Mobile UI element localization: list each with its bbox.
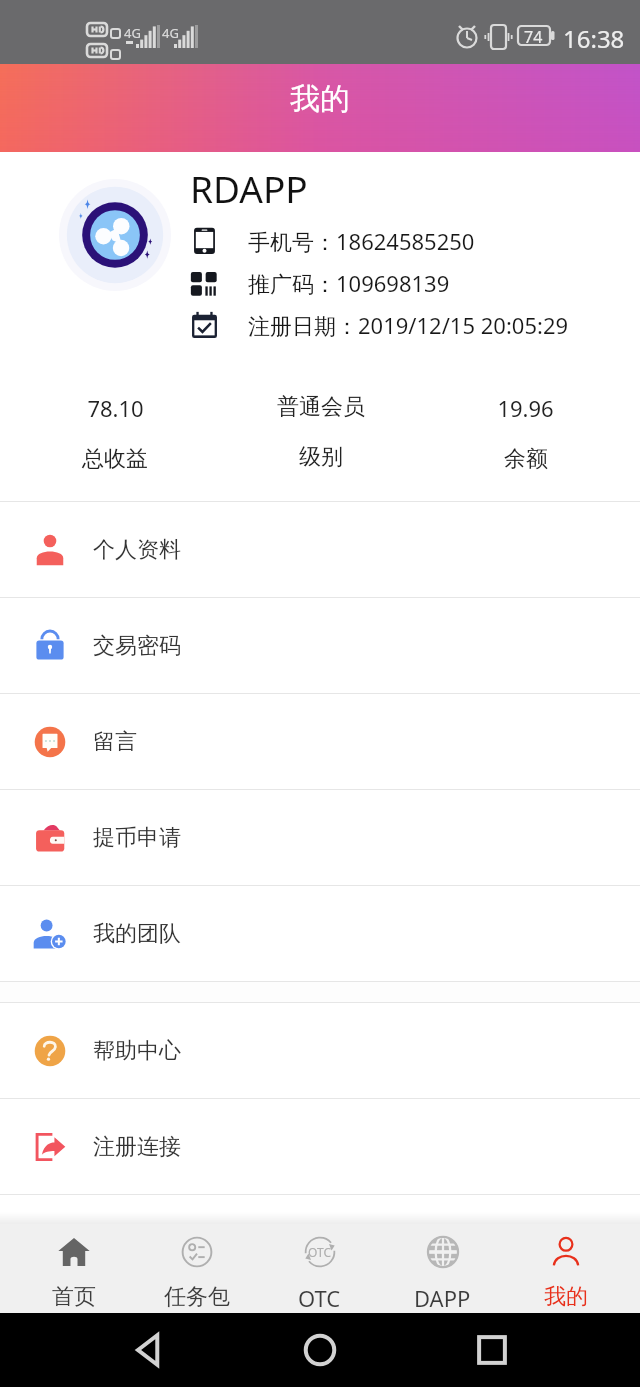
staticText: 首页: [52, 1283, 96, 1311]
button[interactable]: 我的: [504, 1224, 627, 1313]
staticText: 手机号：18624585250: [248, 226, 475, 256]
button[interactable]: Home: [297, 1327, 343, 1373]
staticText: 留言: [93, 728, 137, 756]
staticText: 个人资料: [93, 536, 181, 564]
staticText: 19.96: [497, 393, 554, 423]
staticText: 普通会员: [277, 393, 365, 421]
button[interactable]: 注册连接: [0, 1099, 640, 1195]
staticText: 帮助中心: [93, 1037, 181, 1065]
button[interactable]: 关于我们: [0, 1195, 640, 1224]
staticText: 78.10: [87, 393, 144, 423]
staticText: 我的团队: [93, 920, 181, 948]
button[interactable]: 任务包: [135, 1224, 258, 1313]
button[interactable]: 我的团队: [0, 886, 640, 982]
staticText: 我的: [544, 1283, 588, 1311]
staticText: 注册日期：2019/12/15 20:05:29: [248, 310, 569, 340]
staticText: 4G: [124, 24, 141, 42]
button[interactable]: 个人资料: [0, 502, 640, 598]
button[interactable]: 首页: [13, 1224, 135, 1313]
staticText: OTC: [308, 1244, 332, 1260]
button[interactable]: Recents: [469, 1327, 515, 1373]
button[interactable]: 帮助中心: [0, 1003, 640, 1099]
staticText: 16:38: [563, 22, 625, 55]
button[interactable]: 留言: [0, 694, 640, 790]
staticText: OTC: [298, 1283, 341, 1313]
button[interactable]: Back: [126, 1327, 172, 1373]
staticText: 总收益: [82, 445, 148, 473]
staticText: 交易密码: [93, 632, 181, 660]
staticText: 级别: [299, 443, 343, 471]
staticText: 提币申请: [93, 824, 181, 852]
staticText: 余额: [504, 445, 548, 473]
staticText: 74: [524, 26, 543, 48]
button[interactable]: DAPP: [381, 1224, 504, 1313]
button[interactable]: 交易密码: [0, 598, 640, 694]
staticText: RDAPP: [190, 163, 308, 213]
staticText: 任务包: [164, 1283, 230, 1311]
staticText: 4G: [162, 24, 179, 42]
button[interactable]: 提币申请: [0, 790, 640, 886]
staticText: 推广码：109698139: [248, 268, 450, 298]
staticText: DAPP: [414, 1283, 471, 1313]
button[interactable]: OTC: [258, 1224, 381, 1313]
staticText: 注册连接: [93, 1133, 181, 1161]
staticText: 我的: [290, 80, 350, 118]
